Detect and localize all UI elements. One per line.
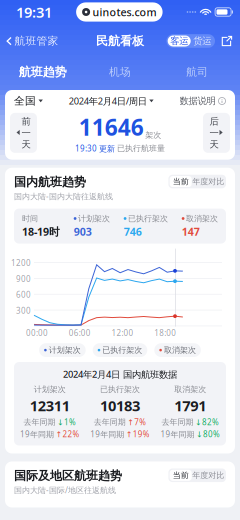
button[interactable]: 分享: [220, 34, 234, 48]
button[interactable]: 当前: [170, 470, 192, 481]
staticText: 计划架次: [78, 214, 110, 223]
staticText: 12311: [30, 396, 70, 415]
staticText: 00:00: [26, 328, 48, 338]
staticText: 航班趋势: [19, 65, 67, 79]
button[interactable]: 后: [203, 113, 230, 153]
button[interactable]: 客运: [168, 35, 191, 46]
staticText: 货运: [193, 35, 211, 47]
staticText: 取消架次: [186, 214, 218, 223]
staticText: 国际及地区航班趋势: [14, 468, 122, 483]
button[interactable]: 航司: [159, 62, 236, 82]
staticText: 19:30 更新: [75, 143, 115, 154]
staticText: 时间: [22, 214, 38, 223]
staticText: 当前: [173, 177, 189, 186]
button[interactable]: 前: [10, 113, 37, 153]
staticText: ↓82%: [195, 417, 219, 427]
staticText: 国内大陆-国内大陆往返航线: [14, 191, 113, 202]
button[interactable]: 货运: [191, 35, 214, 46]
button[interactable]: 数据说明: [179, 91, 235, 111]
staticText: 全国: [14, 94, 36, 107]
staticText: 2024年2月4日/周日: [69, 95, 147, 107]
staticText: 19年同期: [160, 429, 194, 439]
button[interactable]: 计划架次: [39, 343, 86, 357]
button[interactable]: 年度对比: [192, 176, 225, 187]
staticText: 已执行架次: [102, 345, 142, 355]
staticText: ↑7%: [127, 417, 146, 427]
staticText: uinotes.com: [93, 5, 157, 19]
button[interactable]: 取消架次: [154, 343, 201, 357]
staticText: ↓1%: [57, 417, 76, 427]
button[interactable]: 航班趋势: [4, 62, 81, 82]
staticText: 天: [21, 139, 30, 150]
button[interactable]: 机场: [81, 62, 159, 82]
staticText: 去年同期: [23, 417, 55, 427]
staticText: 前: [21, 116, 30, 127]
staticText: 11646: [79, 112, 144, 142]
staticText: ↓80%: [196, 429, 220, 439]
staticText: 19年同期: [90, 429, 124, 439]
staticText: 746: [124, 224, 142, 239]
staticText: 147: [182, 224, 200, 239]
staticText: 300: [16, 305, 31, 316]
staticText: ↑22%: [55, 429, 79, 439]
staticText: 机场: [109, 65, 131, 78]
staticText: 2024年2月4日 国内航班数据: [63, 368, 177, 380]
staticText: 1200: [11, 258, 31, 268]
staticText: 10183: [100, 396, 140, 415]
staticText: 已执行架次: [100, 384, 140, 394]
staticText: 903: [74, 224, 92, 239]
staticText: 当前: [173, 470, 189, 480]
staticText: 航司: [186, 65, 208, 78]
staticText: 600: [16, 289, 31, 300]
staticText: 后: [209, 116, 218, 127]
button[interactable]: 全国: [5, 90, 43, 111]
staticText: 06:00: [69, 328, 91, 338]
staticText: 已执行架次: [128, 214, 168, 223]
staticText: 900: [16, 273, 31, 284]
button[interactable]: 年度对比: [192, 470, 225, 481]
button[interactable]: 2024年2月4日/周日: [69, 91, 154, 111]
staticText: 国内大陆-国际/地区往返航线: [14, 485, 116, 495]
staticText: 客运: [170, 35, 188, 47]
staticText: 已执行航班量: [117, 143, 165, 153]
staticText: 1791: [174, 396, 206, 415]
button[interactable]: 航班管家: [0, 31, 58, 50]
staticText: 19:31: [16, 2, 52, 22]
staticText: 一: [209, 127, 218, 139]
staticText: 取消架次: [164, 345, 196, 355]
staticText: 数据说明: [179, 95, 215, 107]
staticText: 架次: [145, 130, 161, 140]
staticText: 19年同期: [20, 429, 54, 439]
staticText: ↑19%: [126, 429, 150, 439]
staticText: 计划架次: [34, 384, 66, 394]
staticText: 去年同期: [94, 417, 126, 427]
staticText: 国内航班趋势: [14, 175, 86, 189]
staticText: 航班管家: [14, 34, 58, 47]
staticText: 18-19时: [22, 224, 60, 239]
staticText: 民航看板: [96, 34, 144, 48]
staticText: 年度对比: [192, 470, 224, 480]
staticText: 18:00: [154, 328, 176, 338]
button[interactable]: 当前: [170, 176, 192, 187]
staticText: 一: [21, 127, 30, 139]
staticText: 天: [209, 139, 218, 150]
staticText: 计划架次: [49, 345, 81, 355]
staticText: 取消架次: [174, 384, 206, 394]
button[interactable]: 已执行架次: [93, 343, 147, 357]
staticText: 年度对比: [192, 177, 224, 186]
staticText: 去年同期: [161, 417, 193, 427]
staticText: 12:00: [111, 328, 133, 338]
